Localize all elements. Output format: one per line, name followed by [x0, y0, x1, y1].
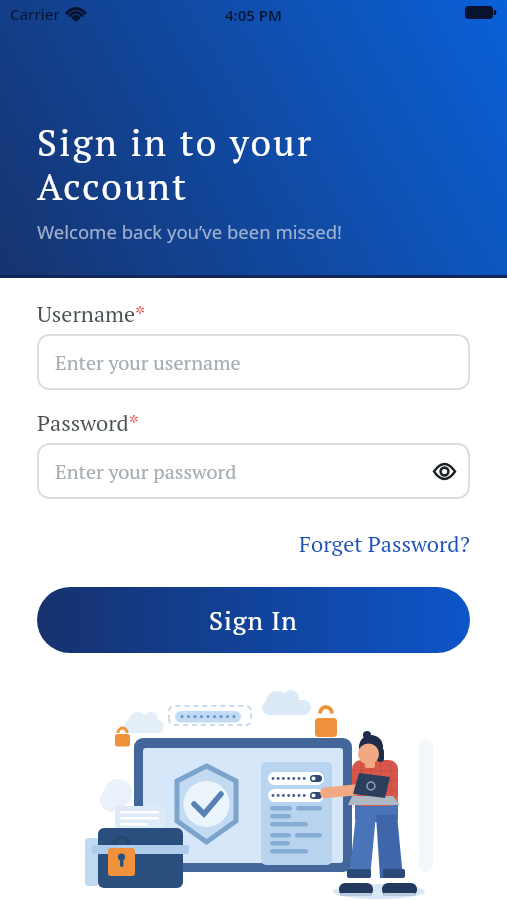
staticText: Enter your username [55, 349, 241, 376]
staticText: Sign In [209, 603, 298, 637]
staticText: 4:05 PM [225, 5, 282, 25]
staticText: Welcome back you’ve been missed! [37, 219, 342, 244]
staticText: Enter your password [55, 458, 237, 485]
button[interactable]: Enter your password [37, 443, 470, 499]
button[interactable]: Sign In [37, 587, 470, 653]
button[interactable]: Enter your username [37, 334, 470, 390]
staticText: Sign in to your Account [37, 118, 314, 210]
staticText: Carrier [10, 4, 60, 24]
staticText: Password* [37, 408, 140, 437]
button[interactable] [433, 462, 456, 481]
staticText: Username* [37, 299, 146, 328]
button[interactable]: Forget Password? [299, 529, 470, 558]
